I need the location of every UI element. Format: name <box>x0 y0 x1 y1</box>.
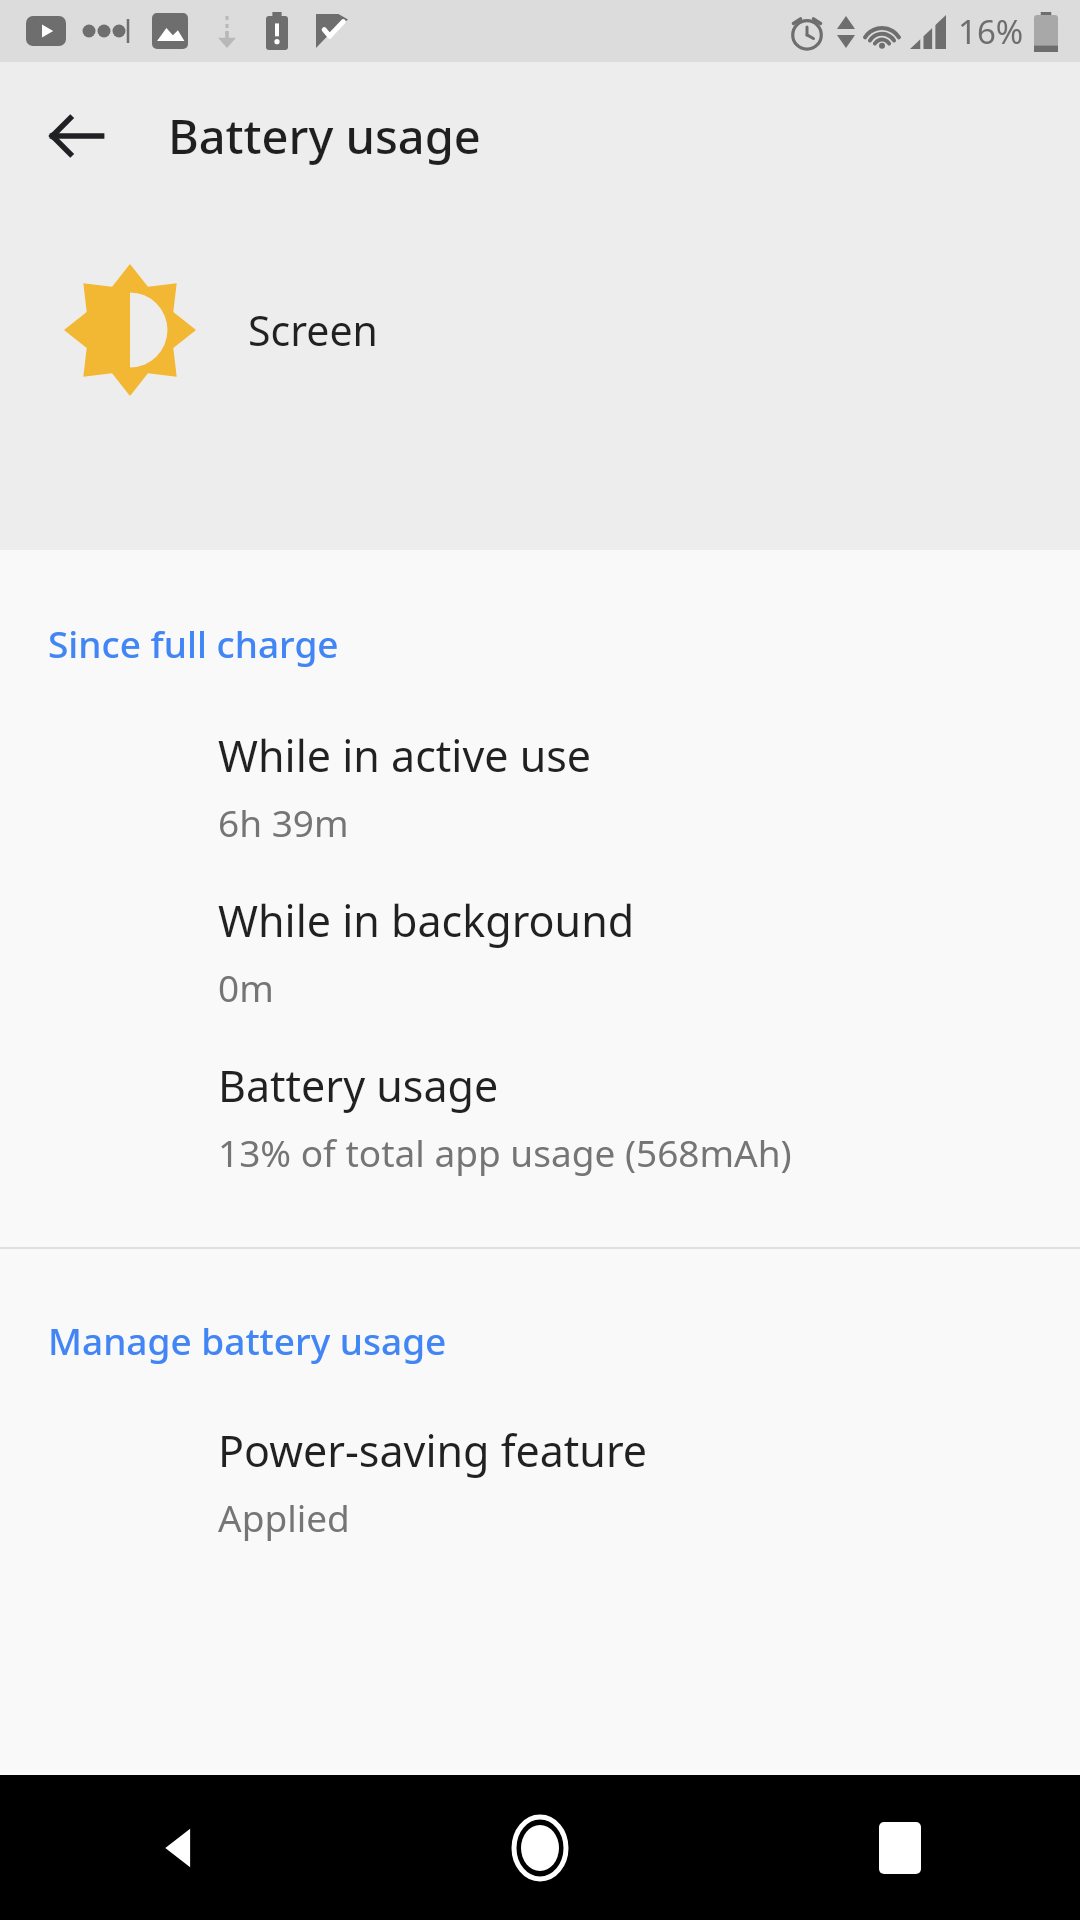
staticText: Battery usage <box>218 1056 499 1115</box>
button[interactable]: Power-saving feature <box>0 1421 1080 1542</box>
staticText: Applied <box>218 1492 350 1542</box>
button[interactable]: While in background <box>0 891 1080 1012</box>
staticText: While in active use <box>218 726 592 785</box>
staticText: 13% of total app usage (568mAh) <box>218 1127 792 1177</box>
button[interactable]: While in active use <box>0 726 1080 847</box>
staticText: Power-saving feature <box>218 1421 648 1480</box>
staticText: While in background <box>218 891 635 950</box>
button[interactable]: Screen <box>0 210 1080 450</box>
button[interactable]: Back <box>0 1775 360 1920</box>
staticText: Battery usage <box>168 104 481 168</box>
staticText: Manage battery usage <box>48 1315 447 1365</box>
staticText: 0m <box>218 962 274 1012</box>
button[interactable]: Home <box>360 1775 720 1920</box>
staticText: Screen <box>248 302 378 358</box>
button[interactable]: Recent apps <box>720 1775 1080 1920</box>
staticText: 16% <box>958 9 1024 54</box>
button[interactable]: Back <box>38 97 116 175</box>
staticText: 6h 39m <box>218 797 349 847</box>
staticText: Since full charge <box>48 618 339 668</box>
button[interactable]: Battery usage <box>0 1056 1080 1177</box>
